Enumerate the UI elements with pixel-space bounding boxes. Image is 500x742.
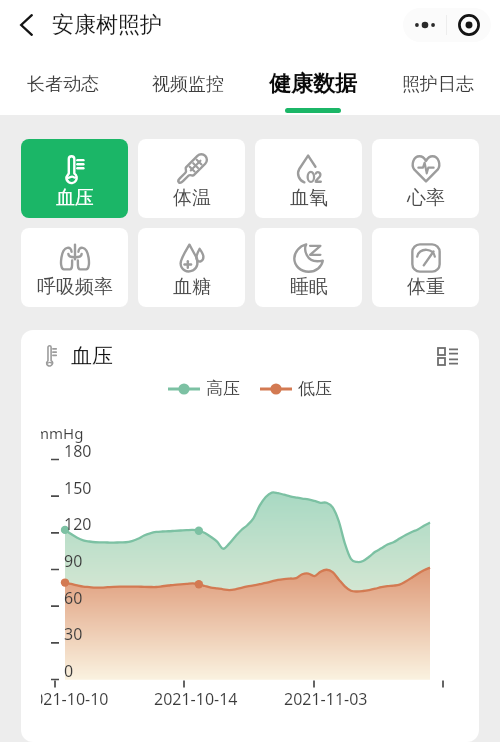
staticText: 60 <box>64 587 83 609</box>
staticText: 血糖 <box>173 275 211 299</box>
button[interactable]: Show data list <box>433 341 463 371</box>
button[interactable]: 体重 <box>372 228 479 307</box>
staticText: 呼吸频率 <box>37 275 113 299</box>
button[interactable]: 健康数据 <box>250 50 375 115</box>
staticText: 睡眠 <box>290 275 328 299</box>
staticText: 血氧 <box>290 186 328 210</box>
staticText: 90 <box>64 550 83 572</box>
button[interactable]: Back <box>8 7 44 43</box>
staticText: 健康数据 <box>269 70 357 98</box>
staticText: 照护日志 <box>402 73 474 96</box>
staticText: 安康树照护 <box>52 11 162 39</box>
staticText: 体重 <box>407 275 445 299</box>
button[interactable]: 血压 <box>21 139 128 218</box>
staticText: 低压 <box>298 378 332 399</box>
staticText: 高压 <box>206 378 240 399</box>
staticText: 2021-10-14 <box>154 688 238 710</box>
staticText: 2021-10-10 <box>41 688 109 710</box>
staticText: 120 <box>64 513 92 535</box>
staticText: 150 <box>64 477 92 499</box>
staticText: 30 <box>64 623 83 645</box>
button[interactable]: 视频监控 <box>125 50 250 115</box>
button[interactable]: 心率 <box>372 139 479 218</box>
staticText: 体温 <box>173 186 211 210</box>
button[interactable]: 呼吸频率 <box>21 228 128 307</box>
staticText: mmHg <box>41 423 84 443</box>
button[interactable]: 血氧 <box>255 139 362 218</box>
button[interactable]: 照护日志 <box>375 50 500 115</box>
staticText: 血压 <box>71 343 113 369</box>
staticText: 180 <box>64 440 92 462</box>
staticText: 心率 <box>407 186 445 210</box>
button[interactable]: 睡眠 <box>255 228 362 307</box>
button[interactable]: 长者动态 <box>0 50 125 115</box>
staticText: 视频监控 <box>152 73 224 96</box>
button[interactable]: Close mini program <box>447 8 491 42</box>
button[interactable]: 血糖 <box>138 228 245 307</box>
staticText: 长者动态 <box>27 73 99 96</box>
button[interactable]: 体温 <box>138 139 245 218</box>
staticText: 2021-11-03 <box>284 688 368 710</box>
staticText: 血压 <box>56 186 94 210</box>
staticText: 0 <box>64 660 74 682</box>
button[interactable]: More options <box>403 8 446 42</box>
